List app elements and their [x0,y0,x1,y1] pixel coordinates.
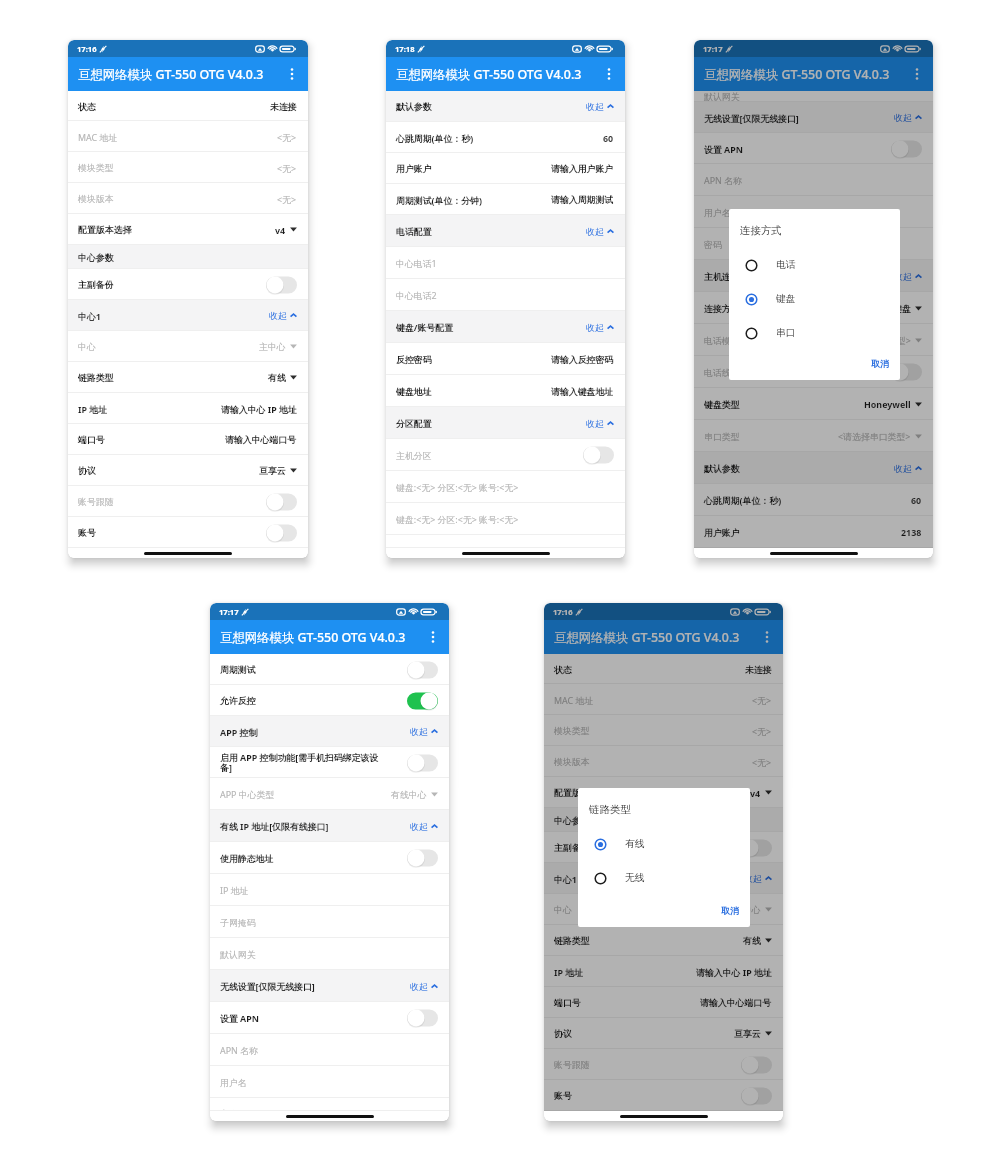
button[interactable]: 周期测试 [210,654,449,685]
button[interactable]: 中心 [544,894,783,925]
button[interactable]: 主机分区 [386,439,625,471]
button[interactable]: 有线 [578,827,750,861]
button[interactable]: 使用静态地址 [210,842,449,874]
button[interactable]: 无线设置[仅限无线接口] [210,970,449,1002]
button[interactable]: Switch off [407,849,438,867]
button[interactable]: 账号 [68,517,308,548]
button[interactable]: Switch off [741,839,772,857]
button[interactable]: Switch off [407,661,438,679]
button[interactable]: 中心电话2 [386,279,625,311]
button[interactable]: 模块类型 [544,715,783,746]
button[interactable]: 电话模块类型 [694,324,933,356]
button[interactable]: Switch off [583,446,614,464]
button[interactable]: 默认参数 [386,91,625,122]
button[interactable]: 用户名 [694,196,933,228]
button[interactable]: 电话配置 [386,215,625,247]
button[interactable]: 主副备份 [544,832,783,863]
button[interactable]: Switch off [741,1056,772,1074]
button[interactable]: 协议 [68,455,308,486]
button[interactable]: Switch off [266,493,297,511]
button[interactable]: 连接方式 [694,292,933,324]
button[interactable]: 心跳周期(单位：秒) [386,122,625,153]
button[interactable]: 状态 [544,654,783,684]
button[interactable]: APP 控制 [210,716,449,747]
button[interactable]: More options [601,66,617,82]
button[interactable]: MAC 地址 [68,121,308,152]
button[interactable]: 账号 [544,1080,783,1111]
button[interactable]: 启用 APP 控制功能[需手机扫码绑定该设 备] [210,747,449,778]
button[interactable]: 取消 [718,904,742,919]
button[interactable]: 取消 [868,357,892,372]
button[interactable]: 允许反控 [210,685,449,716]
button[interactable]: 账号跟随 [68,486,308,517]
button[interactable]: 键盘地址 [386,375,625,407]
button[interactable]: 键盘类型 [694,388,933,420]
button[interactable]: 账号跟随 [544,1049,783,1080]
button[interactable]: 端口号 [68,424,308,455]
button[interactable]: 键盘/账号配置 [386,311,625,343]
button[interactable]: Switch off [266,524,297,542]
button[interactable]: Switch off [891,140,922,158]
button[interactable]: 链路类型 [544,925,783,956]
button[interactable]: 中心 [68,331,308,362]
button[interactable]: Switch off [407,754,438,772]
button[interactable]: 默认网关 [694,91,933,102]
button[interactable]: 键盘:<无> 分区:<无> 账号:<无> [386,503,625,535]
button[interactable]: 默认参数 [694,452,933,484]
button[interactable]: 模块类型 [68,152,308,183]
button[interactable]: APN 名称 [210,1034,449,1066]
button[interactable]: 串口 [729,316,900,350]
button[interactable]: 分区配置 [386,407,625,439]
button[interactable]: 子网掩码 [210,906,449,938]
button[interactable]: More options [425,629,441,645]
button[interactable] [386,535,625,548]
button[interactable]: 用户名 [210,1066,449,1098]
button[interactable]: 中心1 [544,863,783,894]
button[interactable]: 密码 [210,1098,449,1111]
button[interactable]: 电话线故障 [694,356,933,388]
button[interactable]: 无线 [578,861,750,895]
button[interactable]: 中心电话1 [386,247,625,279]
button[interactable]: 设置 APN [210,1002,449,1034]
button[interactable]: 状态 [68,91,308,121]
button[interactable]: 串口类型 [694,420,933,452]
button[interactable]: 配置版本选择 [544,777,783,808]
button[interactable]: 电话 [729,248,900,282]
button[interactable]: 模块版本 [68,183,308,214]
button[interactable]: 协议 [544,1018,783,1049]
button[interactable]: 设置 APN [694,133,933,164]
button[interactable]: 键盘:<无> 分区:<无> 账号:<无> [386,471,625,503]
button[interactable]: APN 名称 [694,164,933,196]
button[interactable]: Switch off [741,1087,772,1105]
button[interactable]: 主副备份 [68,269,308,300]
button[interactable]: 主机连接 [694,260,933,292]
button[interactable]: 链路类型 [68,362,308,393]
button[interactable]: 中心参数 [68,245,308,269]
button[interactable]: 心跳周期(单位：秒) [694,484,933,516]
button[interactable]: Switch on [407,692,438,710]
button[interactable]: IP 地址 [544,956,783,987]
button[interactable]: 键盘 [729,282,900,316]
button[interactable]: APP 中心类型 [210,778,449,810]
button[interactable]: Switch off [266,276,297,294]
button[interactable]: 端口号 [544,987,783,1018]
button[interactable]: 密码 [694,228,933,260]
button[interactable]: More options [909,66,925,82]
button[interactable]: 用户账户 [694,516,933,548]
button[interactable]: 周期测试(单位：分钟) [386,184,625,215]
button[interactable]: Switch off [891,363,922,381]
button[interactable]: IP 地址 [210,874,449,906]
button[interactable]: 中心1 [68,300,308,331]
button[interactable]: Switch off [407,1009,438,1027]
button[interactable]: 用户账户 [386,153,625,184]
button[interactable]: More options [284,66,300,82]
button[interactable]: IP 地址 [68,393,308,424]
button[interactable]: MAC 地址 [544,684,783,715]
button[interactable]: 有线 IP 地址[仅限有线接口] [210,810,449,842]
button[interactable]: 配置版本选择 [68,214,308,245]
button[interactable]: More options [759,629,775,645]
button[interactable]: 中心参数 [544,808,783,832]
button[interactable]: 无线设置[仅限无线接口] [694,102,933,133]
button[interactable]: 默认网关 [210,938,449,970]
button[interactable]: 反控密码 [386,343,625,375]
